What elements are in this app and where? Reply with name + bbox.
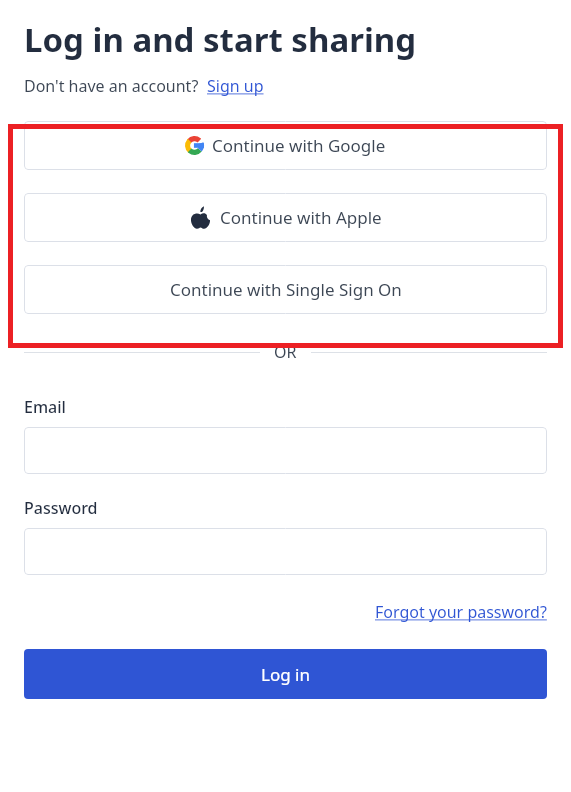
button[interactable]: Continue with Apple xyxy=(24,193,547,242)
staticText: Log in and start sharing xyxy=(24,17,417,62)
staticText: Log in xyxy=(261,663,310,686)
button[interactable]: Password xyxy=(24,528,547,575)
staticText: Continue with Google xyxy=(212,134,386,157)
button[interactable]: Sign up xyxy=(207,75,264,97)
button[interactable]: Continue with Google xyxy=(24,121,547,170)
staticText: Continue with Apple xyxy=(220,206,382,229)
button[interactable]: Continue with Single Sign On xyxy=(24,265,547,314)
staticText: Continue with Single Sign On xyxy=(170,278,402,301)
staticText: OR xyxy=(274,341,297,363)
staticText: Don't have an account? xyxy=(24,75,199,97)
button[interactable]: Log in xyxy=(24,649,547,699)
button[interactable]: Email xyxy=(24,427,547,474)
staticText: Email xyxy=(24,396,66,418)
staticText: Password xyxy=(24,497,98,519)
button[interactable]: Forgot your password? xyxy=(375,601,547,623)
staticText: Sign up xyxy=(207,75,264,97)
staticText: Forgot your password? xyxy=(375,601,547,623)
